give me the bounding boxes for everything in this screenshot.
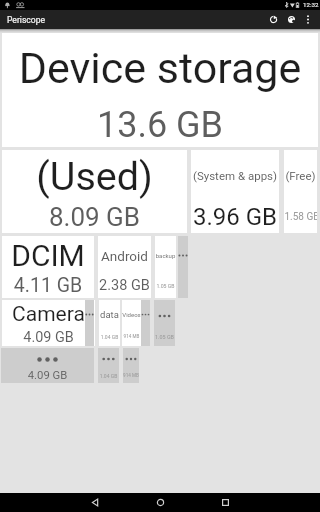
staticText: (Used) (2, 153, 187, 199)
button[interactable]: Used 8.09 GB (2, 150, 187, 233)
staticText: data (99, 309, 120, 320)
staticText: Android (98, 248, 151, 264)
button[interactable]: data 1.04 GB (99, 300, 120, 346)
staticText: 2.38 GB (98, 277, 151, 294)
button[interactable]: Back (75, 493, 115, 512)
button[interactable]: More items (141, 300, 150, 346)
staticText: 1.05 GB (154, 334, 175, 340)
staticText: 4.09 GB (1, 369, 94, 382)
button[interactable]: Camera 4.09 GB (2, 300, 95, 346)
button[interactable]: Home (140, 493, 180, 512)
staticText: 3.96 GB (191, 203, 279, 231)
staticText: 1.58 GB (284, 211, 317, 223)
staticText: 914 MB (123, 373, 139, 378)
staticText: Device storage (2, 43, 318, 93)
staticText: Periscope (7, 15, 46, 25)
staticText: backup (155, 252, 176, 259)
button[interactable]: Recent apps (205, 493, 245, 512)
button[interactable]: backup 1.05 GB (155, 236, 176, 298)
button[interactable]: Device storage 13.6 GB (2, 33, 318, 147)
staticText: 1.04 GB (99, 334, 120, 340)
button[interactable]: More items 914 MB (123, 348, 139, 383)
staticText: 8.09 GB (2, 202, 187, 232)
staticText: 1.05 GB (155, 283, 176, 289)
staticText: (System & apps) (191, 169, 279, 182)
button[interactable]: DCIM 4.11 GB (2, 236, 94, 298)
staticText: Camera (2, 302, 95, 327)
button[interactable]: More items (85, 300, 94, 346)
staticText: DCIM (2, 238, 94, 273)
button[interactable]: More options (300, 10, 316, 29)
button[interactable]: More items (178, 236, 188, 298)
staticText: Videos (122, 311, 141, 318)
button[interactable]: System and apps 3.96 GB (191, 150, 279, 233)
button[interactable]: Refresh (264, 10, 282, 29)
button[interactable]: Change colour palette (282, 10, 300, 29)
staticText: 1.04 GB (98, 373, 119, 379)
staticText: (Free) (284, 169, 317, 182)
staticText: 12:32 (303, 1, 319, 8)
staticText: 4.11 GB (2, 274, 94, 297)
button[interactable]: Free 1.58 GB (284, 150, 317, 233)
button[interactable]: Android 2.38 GB (98, 236, 151, 298)
button[interactable]: More items 4.09 GB (1, 348, 94, 383)
button[interactable]: More items 1.05 GB (154, 300, 175, 346)
button[interactable]: More items 1.04 GB (98, 348, 119, 383)
staticText: 13.6 GB (2, 104, 318, 146)
staticText: 4.09 GB (2, 329, 95, 346)
staticText: 914 MB (122, 334, 141, 339)
button[interactable]: Videos 914 MB (122, 300, 141, 346)
